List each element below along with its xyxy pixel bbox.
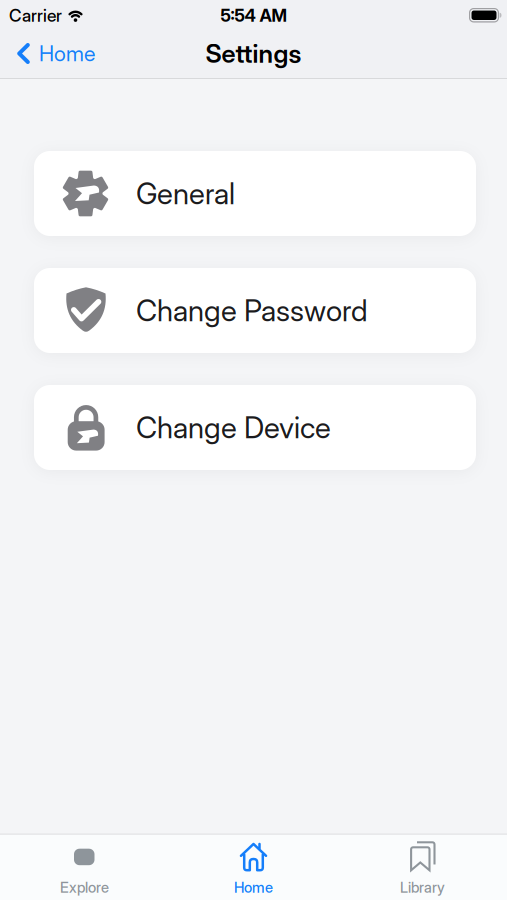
button[interactable]: General — [34, 151, 476, 236]
staticText: General — [136, 176, 235, 211]
button[interactable]: Change Password — [34, 268, 476, 353]
button[interactable]: Home — [0, 41, 95, 68]
staticText: Explore — [60, 879, 109, 896]
staticText: Home — [39, 41, 95, 66]
staticText: 5:54 AM — [220, 5, 286, 26]
button[interactable]: Change Device — [34, 385, 476, 470]
staticText: Settings — [205, 39, 301, 68]
staticText: Library — [400, 879, 445, 896]
staticText: Change Password — [136, 293, 368, 328]
button[interactable]: Home — [169, 842, 338, 896]
staticText: Carrier — [9, 5, 62, 26]
staticText: Home — [234, 879, 273, 896]
button[interactable]: Library — [338, 842, 507, 896]
button[interactable]: Explore — [0, 842, 169, 896]
staticText: Change Device — [136, 410, 331, 445]
